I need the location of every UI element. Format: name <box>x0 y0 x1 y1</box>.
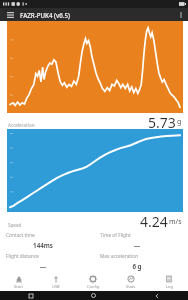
button[interactable]: Acceleration graph <box>7 21 183 113</box>
staticText: Time of Flight <box>100 232 131 239</box>
staticText: FAZR-PUK4 (v6.5) <box>20 11 70 19</box>
button[interactable]: Speed <box>0 212 188 229</box>
button[interactable]: Recent apps <box>0 291 62 300</box>
button[interactable]: More options <box>174 8 188 21</box>
staticText: Config <box>87 284 100 289</box>
staticText: Max acceleration <box>100 253 139 260</box>
staticText: g <box>177 117 182 127</box>
button[interactable]: Contact time <box>0 230 94 251</box>
button[interactable]: Open navigation menu <box>0 8 20 21</box>
button[interactable]: Home <box>62 291 125 300</box>
staticText: 6 g <box>100 262 174 270</box>
button[interactable]: Log <box>150 273 188 291</box>
staticText: USB <box>52 284 60 289</box>
staticText: 4.24 <box>140 212 168 229</box>
staticText: Start <box>14 284 23 289</box>
staticText: 5.73 <box>148 113 176 129</box>
button[interactable]: Start <box>0 273 37 291</box>
staticText: --- <box>100 241 174 249</box>
button[interactable]: Stats <box>112 273 150 291</box>
staticText: Flight distance <box>6 253 39 260</box>
staticText: Speed <box>8 222 22 228</box>
button[interactable]: Config <box>74 273 112 291</box>
button[interactable]: Flight distance <box>0 251 94 273</box>
staticText: Acceleration <box>8 122 35 128</box>
staticText: m/s <box>169 217 182 227</box>
button[interactable]: Time of Flight <box>94 230 188 251</box>
staticText: Contact time <box>6 232 35 239</box>
staticText: Stats <box>126 284 136 289</box>
staticText: Log <box>166 284 173 289</box>
staticText: --- <box>6 262 80 270</box>
button[interactable]: Back <box>125 291 188 300</box>
button[interactable]: USB <box>37 273 74 291</box>
button[interactable]: Max acceleration <box>94 251 188 273</box>
button[interactable]: Speed graph <box>7 129 183 212</box>
button[interactable]: Acceleration <box>0 113 188 129</box>
staticText: 144ms <box>6 241 80 249</box>
